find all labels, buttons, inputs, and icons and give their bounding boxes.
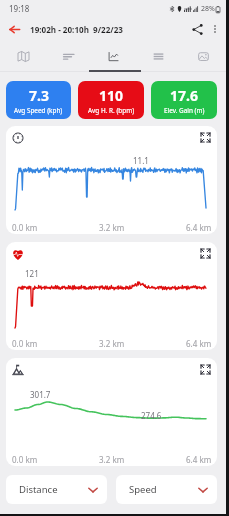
staticText: 17.6 (170, 86, 198, 105)
button[interactable]: Expand chart (200, 248, 210, 258)
staticText: Elev. Gain (m) (164, 106, 205, 115)
staticText: 3.2 km (99, 222, 125, 233)
staticText: 3.2 km (99, 338, 125, 349)
button[interactable]: Charts (91, 41, 136, 71)
staticText: Avg H. R. (bpm) (88, 106, 135, 115)
staticText: 110 (99, 86, 124, 105)
staticText: 6.4 km (186, 338, 212, 349)
staticText: 301.7 (30, 389, 51, 400)
staticText: 7.3 (29, 86, 49, 105)
button[interactable]: Expand chart (6, 358, 217, 466)
button[interactable]: Laps (136, 41, 181, 71)
staticText: Distance (19, 483, 58, 496)
button[interactable]: 17.6 (151, 81, 217, 119)
button[interactable]: Details (46, 41, 91, 71)
staticText: 274.6 (141, 410, 162, 421)
staticText: 28% (201, 4, 215, 14)
staticText: 3.2 km (99, 454, 125, 465)
button[interactable]: 110 (78, 81, 144, 119)
staticText: Avg Speed (kph) (14, 106, 63, 115)
staticText: 0.0 km (12, 454, 38, 465)
button[interactable]: Distance (6, 475, 107, 504)
button[interactable]: Expand chart (200, 364, 210, 374)
staticText: 0.0 km (12, 222, 38, 233)
button[interactable]: Back (4, 19, 24, 39)
staticText: 19:02h - 20:10h 9/22/23 (30, 24, 123, 35)
staticText: 6.4 km (186, 222, 212, 233)
button[interactable]: Expand chart (6, 242, 217, 350)
button[interactable]: Speed (116, 475, 217, 504)
staticText: 121 (25, 268, 39, 279)
button[interactable]: 7.3 (6, 81, 71, 119)
staticText: Speed (129, 483, 157, 496)
staticText: 11.1 (133, 155, 149, 166)
button[interactable]: More options (207, 21, 223, 37)
staticText: 6.4 km (186, 454, 212, 465)
button[interactable]: Expand chart (200, 132, 210, 142)
button[interactable]: Map (0, 41, 46, 71)
button[interactable]: Expand chart (6, 126, 217, 234)
staticText: 0.0 km (12, 338, 38, 349)
button[interactable]: Photos (181, 41, 226, 71)
button[interactable]: Share (187, 19, 207, 39)
staticText: 19:18 (9, 3, 30, 14)
